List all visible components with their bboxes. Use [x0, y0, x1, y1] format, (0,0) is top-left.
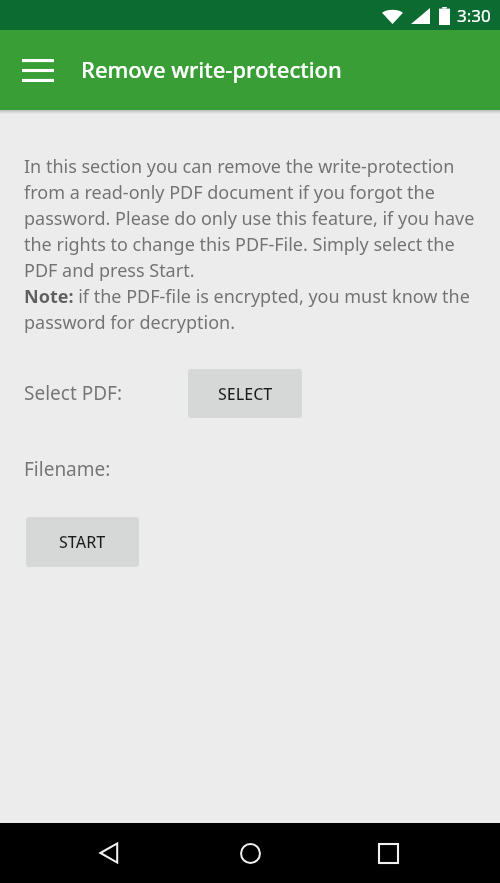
button[interactable]: Recent apps	[362, 827, 414, 879]
staticText: Select PDF:	[24, 380, 123, 406]
staticText: In this section you can remove the write…	[24, 154, 484, 335]
button[interactable]: SELECT	[188, 369, 302, 418]
staticText: SELECT	[218, 383, 273, 405]
button[interactable]: START	[26, 517, 139, 567]
button[interactable]: Home	[224, 827, 276, 879]
button[interactable]: Open navigation menu	[8, 40, 68, 100]
staticText: Filename:	[24, 456, 111, 482]
button[interactable]: Back	[84, 827, 136, 879]
staticText: 3:30	[457, 4, 491, 27]
staticText: START	[59, 531, 106, 553]
staticText: Remove write-protection	[81, 54, 342, 84]
